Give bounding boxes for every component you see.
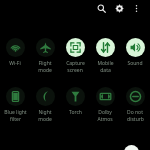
button[interactable]: Mobile (90, 38, 120, 74)
staticText: screen (67, 67, 83, 74)
staticText: Night (38, 109, 52, 116)
button[interactable]: Search (95, 2, 108, 15)
button[interactable]: Do not (120, 87, 150, 123)
button[interactable]: Bluetooth (124, 145, 139, 150)
button[interactable]: More options (130, 2, 143, 15)
staticText: filter (10, 116, 21, 123)
button[interactable]: Dolby (90, 87, 120, 123)
staticText: Dolby (98, 109, 112, 116)
staticText: disturb (127, 116, 144, 123)
staticText: mode (38, 116, 52, 123)
staticText: data (100, 67, 111, 74)
staticText: Sound (127, 60, 143, 67)
button[interactable]: Night (30, 87, 60, 123)
staticText: Capture (66, 60, 85, 67)
button[interactable]: Blue light (0, 87, 30, 123)
button[interactable]: Flight (30, 38, 60, 74)
button[interactable]: Wi-Fi (0, 38, 30, 67)
button[interactable]: Sound (120, 38, 150, 67)
staticText: Torch (69, 109, 82, 116)
staticText: mode (38, 67, 52, 74)
button[interactable]: Capture (60, 38, 90, 74)
staticText: Wi-Fi (9, 60, 21, 67)
staticText: Blue light (4, 109, 27, 116)
staticText: Atmos (97, 116, 113, 123)
staticText: Do not (127, 109, 143, 116)
staticText: Mobile (97, 60, 114, 67)
button[interactable]: Settings (113, 2, 126, 15)
staticText: Flight (38, 60, 52, 67)
button[interactable]: Torch (60, 87, 90, 116)
